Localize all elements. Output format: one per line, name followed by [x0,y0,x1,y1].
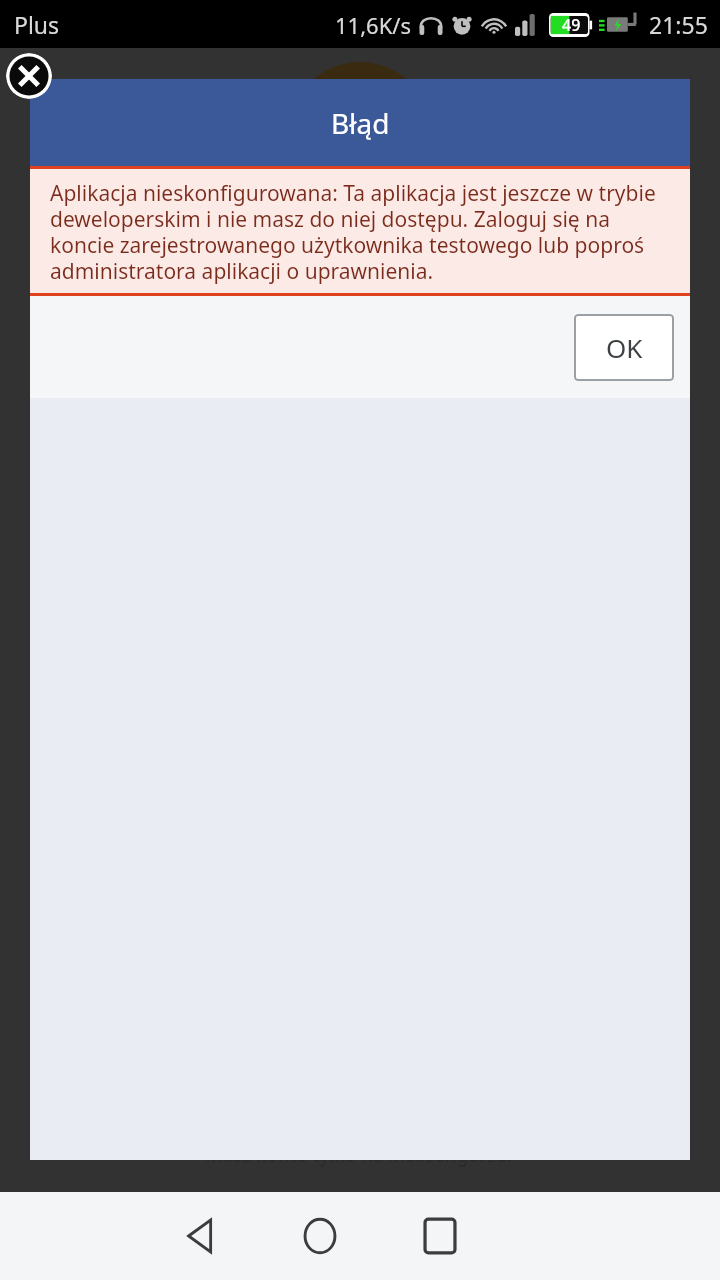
staticText: 49 [562,14,581,36]
staticText: 11,6K/s [335,10,411,40]
staticText: 21:55 [649,9,708,40]
staticText: OK [606,330,643,365]
button[interactable]: Back [160,1196,240,1276]
button[interactable]: Home [280,1196,360,1276]
button[interactable]: Close [6,53,52,99]
button[interactable]: OK [574,314,674,381]
button[interactable]: Recent apps [400,1196,480,1276]
staticText: Masz konto tylko na Messengerze? [0,1142,720,1168]
staticText: Błąd [331,104,390,142]
staticText: Aplikacja nieskonfigurowana: Ta aplikacj… [50,179,676,286]
staticText: Plus [14,9,60,40]
